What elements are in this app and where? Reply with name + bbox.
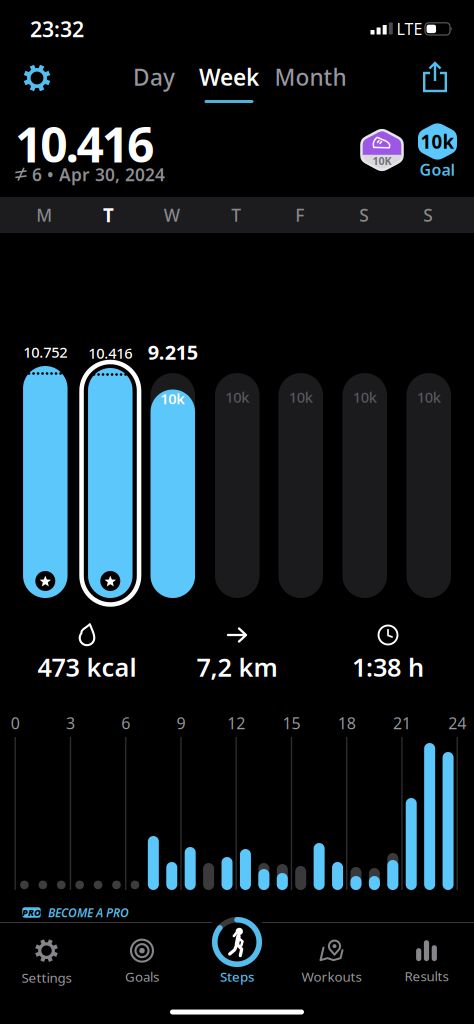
staticText: Day <box>133 62 175 92</box>
staticText: Results <box>404 967 448 985</box>
staticText: 10k <box>417 387 441 407</box>
staticText: 9 <box>176 712 185 734</box>
staticText: 18 <box>338 712 356 734</box>
button[interactable]: Settings <box>15 56 59 100</box>
staticText: 9.215 <box>148 339 198 365</box>
staticText: 10k <box>353 387 377 407</box>
button[interactable]: Wednesday <box>150 373 195 598</box>
staticText: 24 <box>448 712 466 734</box>
staticText: • <box>47 163 54 186</box>
staticText: 10K <box>372 154 391 168</box>
staticText: S <box>359 203 369 226</box>
staticText: 7,2 km <box>196 650 277 684</box>
button[interactable]: Monday <box>23 366 67 598</box>
button[interactable]: Settings <box>0 930 92 994</box>
staticText: 23:32 <box>30 15 84 43</box>
button[interactable]: Week <box>197 57 261 97</box>
staticText: W <box>164 203 180 226</box>
staticText: PRO <box>22 906 41 919</box>
button[interactable]: Sunday <box>406 373 451 598</box>
staticText: Goal <box>419 159 455 180</box>
staticText: 6 <box>121 712 130 734</box>
button[interactable]: Steps <box>190 915 284 995</box>
button[interactable]: Day <box>124 57 184 97</box>
staticText: Workouts <box>301 968 361 985</box>
button[interactable]: Tuesday <box>88 368 132 598</box>
staticText: BECOME A PRO <box>48 904 129 920</box>
button[interactable]: Friday <box>278 373 323 598</box>
button[interactable]: Goals <box>96 930 188 994</box>
staticText: S <box>423 203 433 226</box>
button[interactable]: PRO <box>22 902 158 922</box>
button[interactable]: Share <box>413 55 457 99</box>
staticText: T <box>231 203 241 226</box>
staticText: 0 <box>11 712 20 734</box>
staticText: Goals <box>125 968 159 985</box>
staticText: M <box>36 203 52 226</box>
staticText: 1:38 h <box>352 650 424 684</box>
staticText: 10k <box>289 387 313 407</box>
staticText: Steps <box>220 968 254 985</box>
button[interactable]: Results <box>380 930 472 994</box>
staticText: 3 <box>66 712 75 734</box>
staticText: 10k <box>160 389 185 408</box>
staticText: T <box>103 203 114 227</box>
button[interactable]: Workouts <box>285 930 377 994</box>
staticText: 15 <box>282 712 300 734</box>
staticText: 10k <box>225 387 249 407</box>
staticText: Week <box>199 62 259 92</box>
staticText: 10k <box>420 129 454 154</box>
staticText: 12 <box>227 712 245 734</box>
staticText: Apr 30, 2024 <box>59 163 165 186</box>
staticText: 6 <box>32 163 42 186</box>
button[interactable]: Month <box>274 57 346 97</box>
staticText: 473 kcal <box>37 650 136 684</box>
staticText: 21 <box>393 712 411 734</box>
staticText: F <box>295 203 304 226</box>
staticText: Month <box>274 62 346 92</box>
staticText: LTE <box>396 18 422 39</box>
button[interactable]: Saturday <box>342 373 387 598</box>
staticText: 10.752 <box>23 342 67 362</box>
staticText: 10.416 <box>15 112 154 176</box>
button[interactable]: Step goal <box>417 121 457 161</box>
button[interactable]: Thursday <box>215 373 259 598</box>
staticText: Settings <box>21 969 71 986</box>
staticText: 10.416 <box>88 343 132 363</box>
